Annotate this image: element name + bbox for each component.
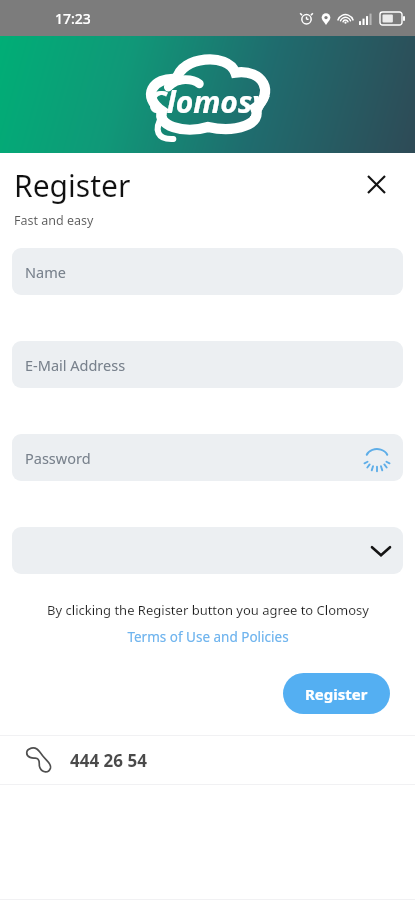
button[interactable]: Select option xyxy=(12,527,403,574)
button[interactable]: Terms of Use and Policies xyxy=(121,626,295,648)
staticText: Register xyxy=(14,165,131,206)
staticText: Password xyxy=(25,448,91,468)
button[interactable]: E-Mail Address xyxy=(12,341,403,388)
staticText: 444 26 54 xyxy=(70,749,147,772)
staticText: E-Mail Address xyxy=(25,355,126,375)
button[interactable]: Call 444 26 54 xyxy=(0,736,415,784)
staticText: Terms of Use and Policies xyxy=(127,628,289,646)
button[interactable]: Close xyxy=(361,169,391,199)
button[interactable]: Name xyxy=(12,248,403,295)
staticText: Clomosy xyxy=(148,81,268,122)
staticText: Name xyxy=(25,262,66,282)
staticText: By clicking the Register button you agre… xyxy=(47,601,369,619)
staticText: 17:23 xyxy=(55,9,91,28)
staticText: Register xyxy=(305,684,368,704)
button[interactable]: Password xyxy=(12,434,403,481)
staticText: Fast and easy xyxy=(14,212,94,229)
button[interactable]: Register xyxy=(283,673,390,714)
